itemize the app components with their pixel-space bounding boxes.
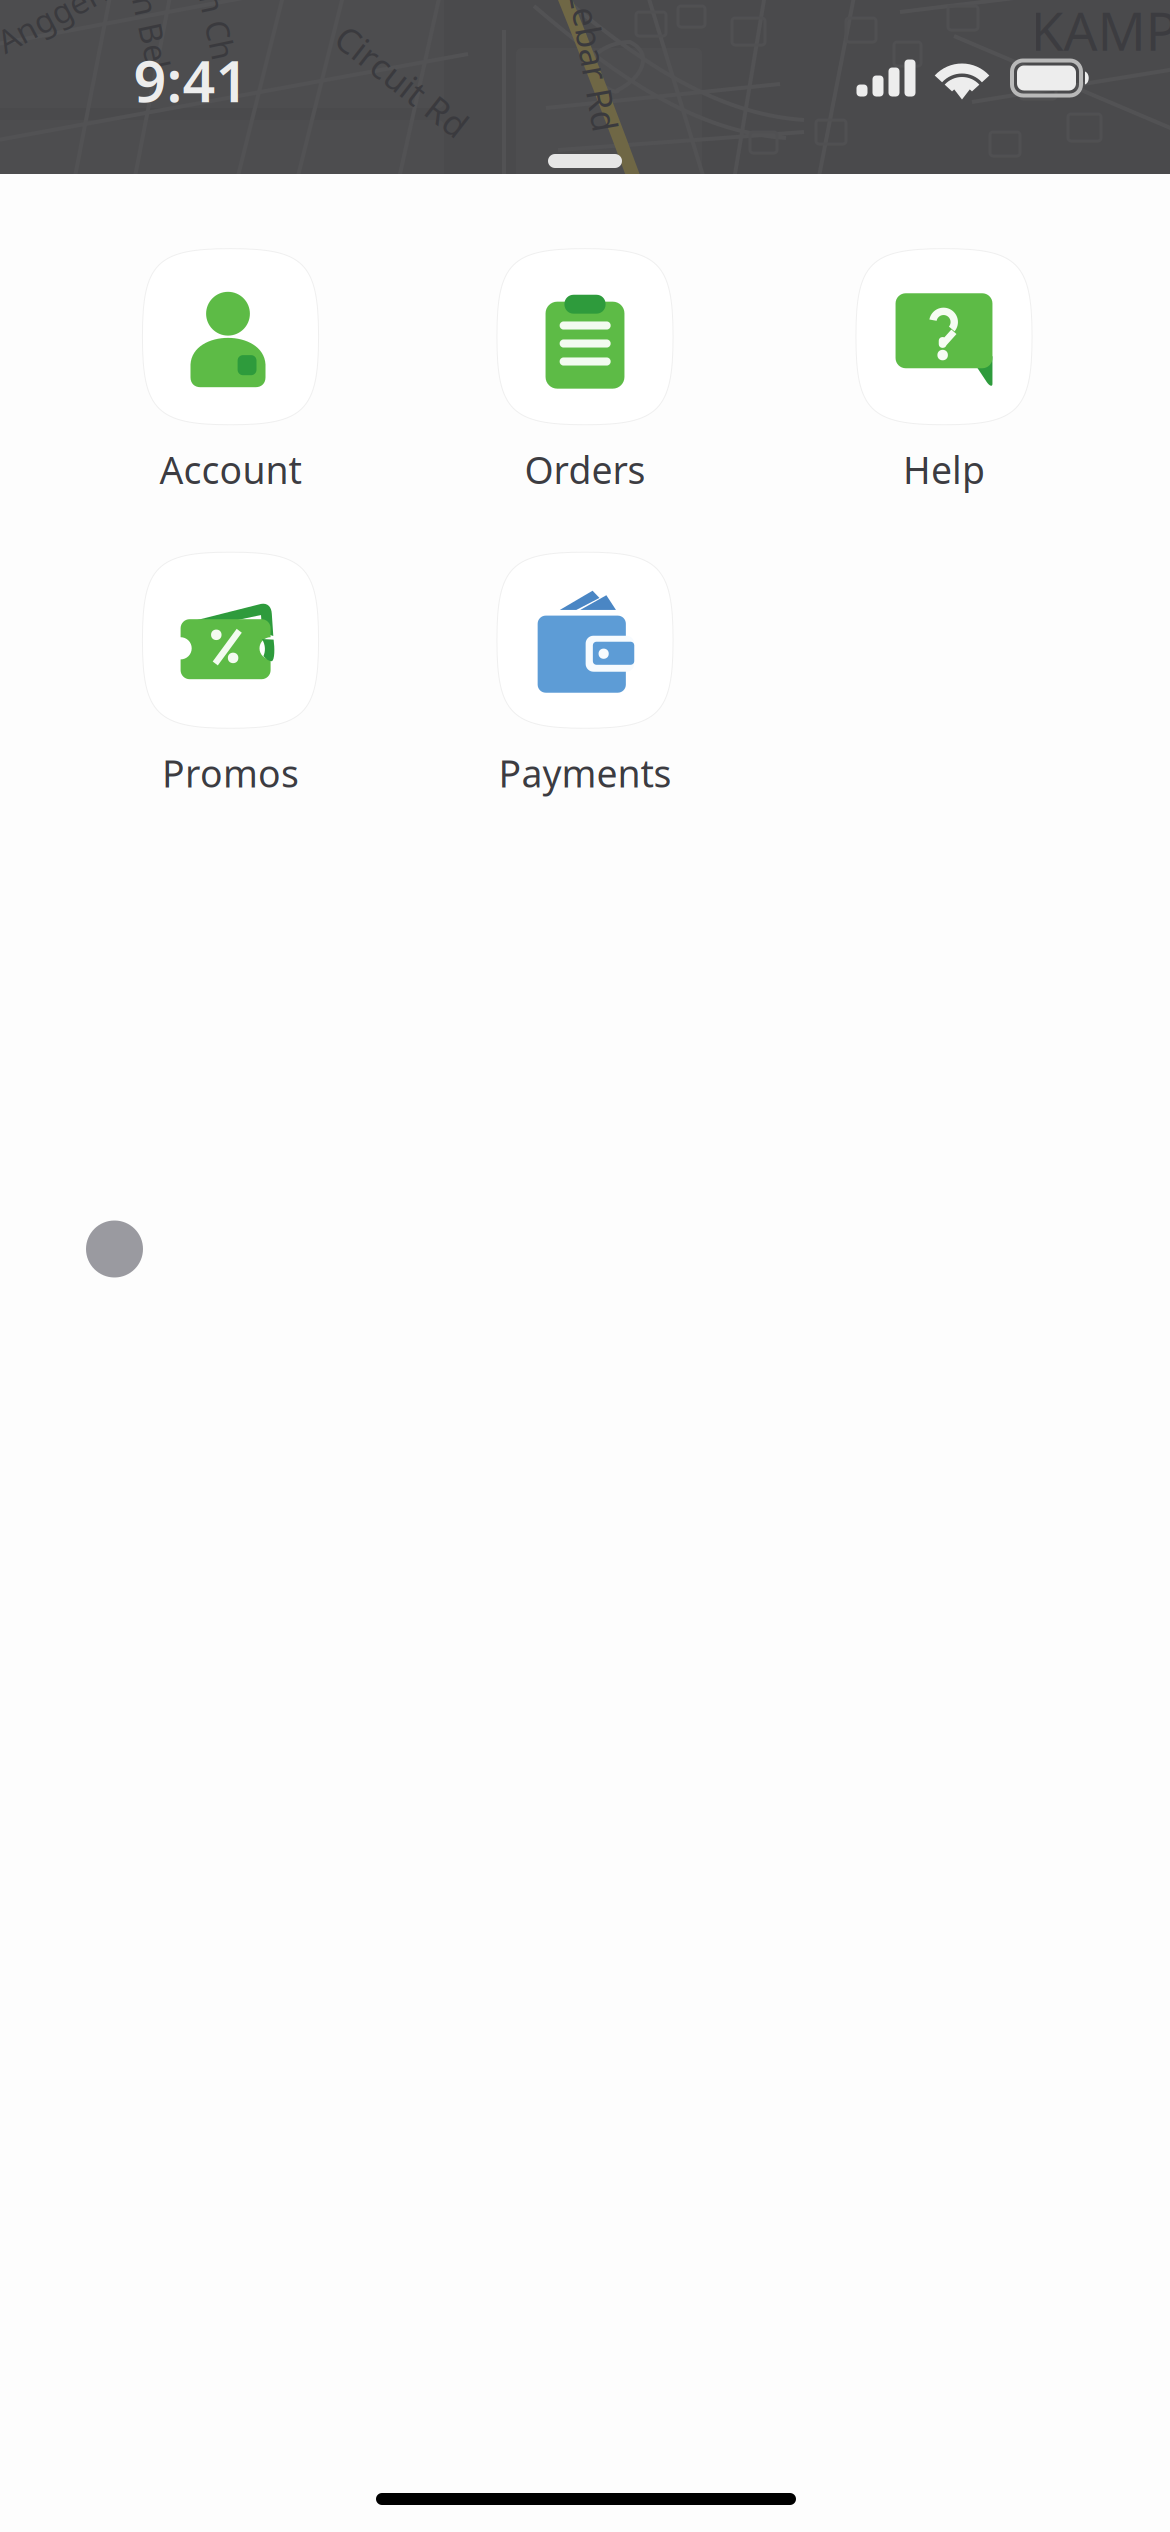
button[interactable]: Payments <box>497 552 673 802</box>
staticText: Jln Anggerk <box>0 3 122 45</box>
staticText: Help <box>903 445 985 494</box>
staticText: KAMP <box>1030 0 1170 65</box>
button[interactable]: Help <box>856 249 1032 498</box>
staticText: Circuit Rd <box>323 58 480 104</box>
button[interactable]: Orders <box>497 249 673 498</box>
staticText: Promos <box>162 748 299 798</box>
button[interactable]: Account <box>142 249 318 498</box>
staticText: 9:41 <box>133 42 248 118</box>
staticText: Account <box>159 445 301 494</box>
staticText: Jln Ch <box>173 0 258 39</box>
button[interactable]: Promos <box>142 552 318 802</box>
staticText: Payments <box>498 748 671 798</box>
staticText: Orders <box>524 445 645 494</box>
staticText: Lebar Rd <box>522 37 666 83</box>
staticText: Jln Bel <box>104 3 196 45</box>
